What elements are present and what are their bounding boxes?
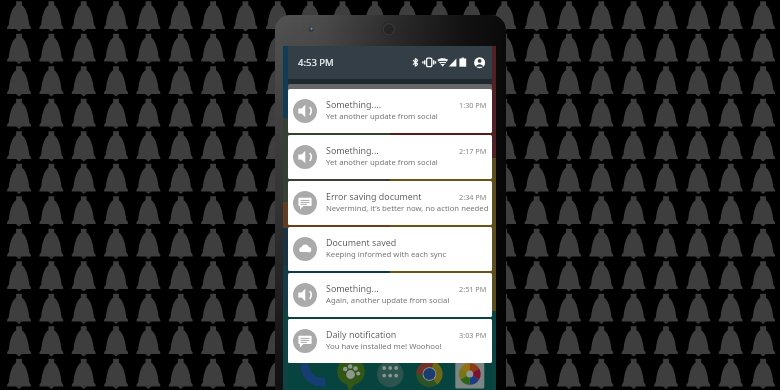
staticText: Something... (326, 282, 379, 294)
staticText: 1:30 PM (459, 100, 487, 110)
staticText: Again, another update from social (326, 295, 450, 306)
button[interactable]: Daily notification (288, 319, 492, 363)
staticText: 2:34 PM (459, 192, 487, 202)
staticText: Something... (326, 144, 379, 156)
staticText: 2:17 PM (459, 146, 487, 156)
button[interactable]: Something... (288, 135, 492, 179)
staticText: Yet another update from social (326, 111, 438, 122)
staticText: Document saved (326, 236, 397, 248)
button[interactable]: Something... (288, 273, 492, 317)
staticText: Error saving document (326, 190, 422, 202)
button[interactable]: Error saving document (288, 181, 492, 225)
staticText: Yet another update from social (326, 157, 438, 168)
staticText: 4:53 PM (298, 56, 334, 69)
staticText: Daily notification (326, 328, 397, 340)
staticText: Something.... (326, 98, 382, 110)
staticText: 3:03 PM (459, 330, 487, 340)
button[interactable]: Document saved (288, 227, 492, 271)
button[interactable]: Something.... (288, 89, 492, 133)
staticText: 2:51 PM (459, 284, 487, 294)
staticText: You have installed me! Woohoo! (326, 341, 442, 352)
staticText: Keeping informed with each sync (326, 249, 447, 260)
staticText: Nevermind, it’s better now, no action ne… (326, 203, 489, 214)
